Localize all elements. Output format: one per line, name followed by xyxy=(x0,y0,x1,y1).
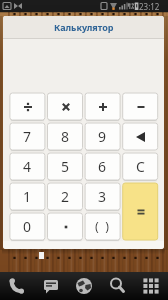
button[interactable] xyxy=(48,93,83,120)
button[interactable]: 6 xyxy=(85,153,120,180)
staticText: Калькулятор xyxy=(54,21,114,33)
button[interactable]: 3 xyxy=(85,183,120,210)
button[interactable]: C xyxy=(123,153,158,180)
button[interactable]: 5 xyxy=(48,153,83,180)
staticText: 5 xyxy=(61,157,70,176)
staticText: 4 xyxy=(23,157,32,176)
button[interactable]: ( ) xyxy=(85,213,120,240)
button[interactable] xyxy=(48,213,83,240)
button[interactable]: 1 xyxy=(10,183,45,210)
button[interactable]: 2 xyxy=(48,183,83,210)
button[interactable]: 4 xyxy=(10,153,45,180)
staticText: 8 xyxy=(61,127,70,146)
staticText: 6 xyxy=(98,157,107,176)
staticText: 1 xyxy=(23,187,32,206)
staticText: 2 xyxy=(61,187,70,206)
staticText: 0 xyxy=(23,217,32,236)
staticText: ( ) xyxy=(95,218,110,235)
button[interactable] xyxy=(10,93,45,120)
button[interactable] xyxy=(123,93,158,120)
button[interactable] xyxy=(139,273,163,299)
button[interactable]: 7 xyxy=(10,123,45,150)
staticText: 7 xyxy=(23,127,32,146)
button[interactable] xyxy=(106,273,130,299)
button[interactable] xyxy=(123,183,158,240)
button[interactable] xyxy=(85,93,120,120)
button[interactable] xyxy=(5,273,29,299)
button[interactable]: 8 xyxy=(48,123,83,150)
staticText: 3 xyxy=(98,187,107,206)
button[interactable]: 9 xyxy=(85,123,120,150)
button[interactable]: Калькулятор xyxy=(3,16,164,38)
button[interactable] xyxy=(123,123,158,150)
staticText: 23:12 xyxy=(139,1,160,12)
staticText: 9 xyxy=(98,127,107,146)
button[interactable] xyxy=(72,273,96,299)
staticText: C xyxy=(136,157,145,176)
button[interactable]: 0 xyxy=(10,213,45,240)
button[interactable] xyxy=(39,273,63,299)
